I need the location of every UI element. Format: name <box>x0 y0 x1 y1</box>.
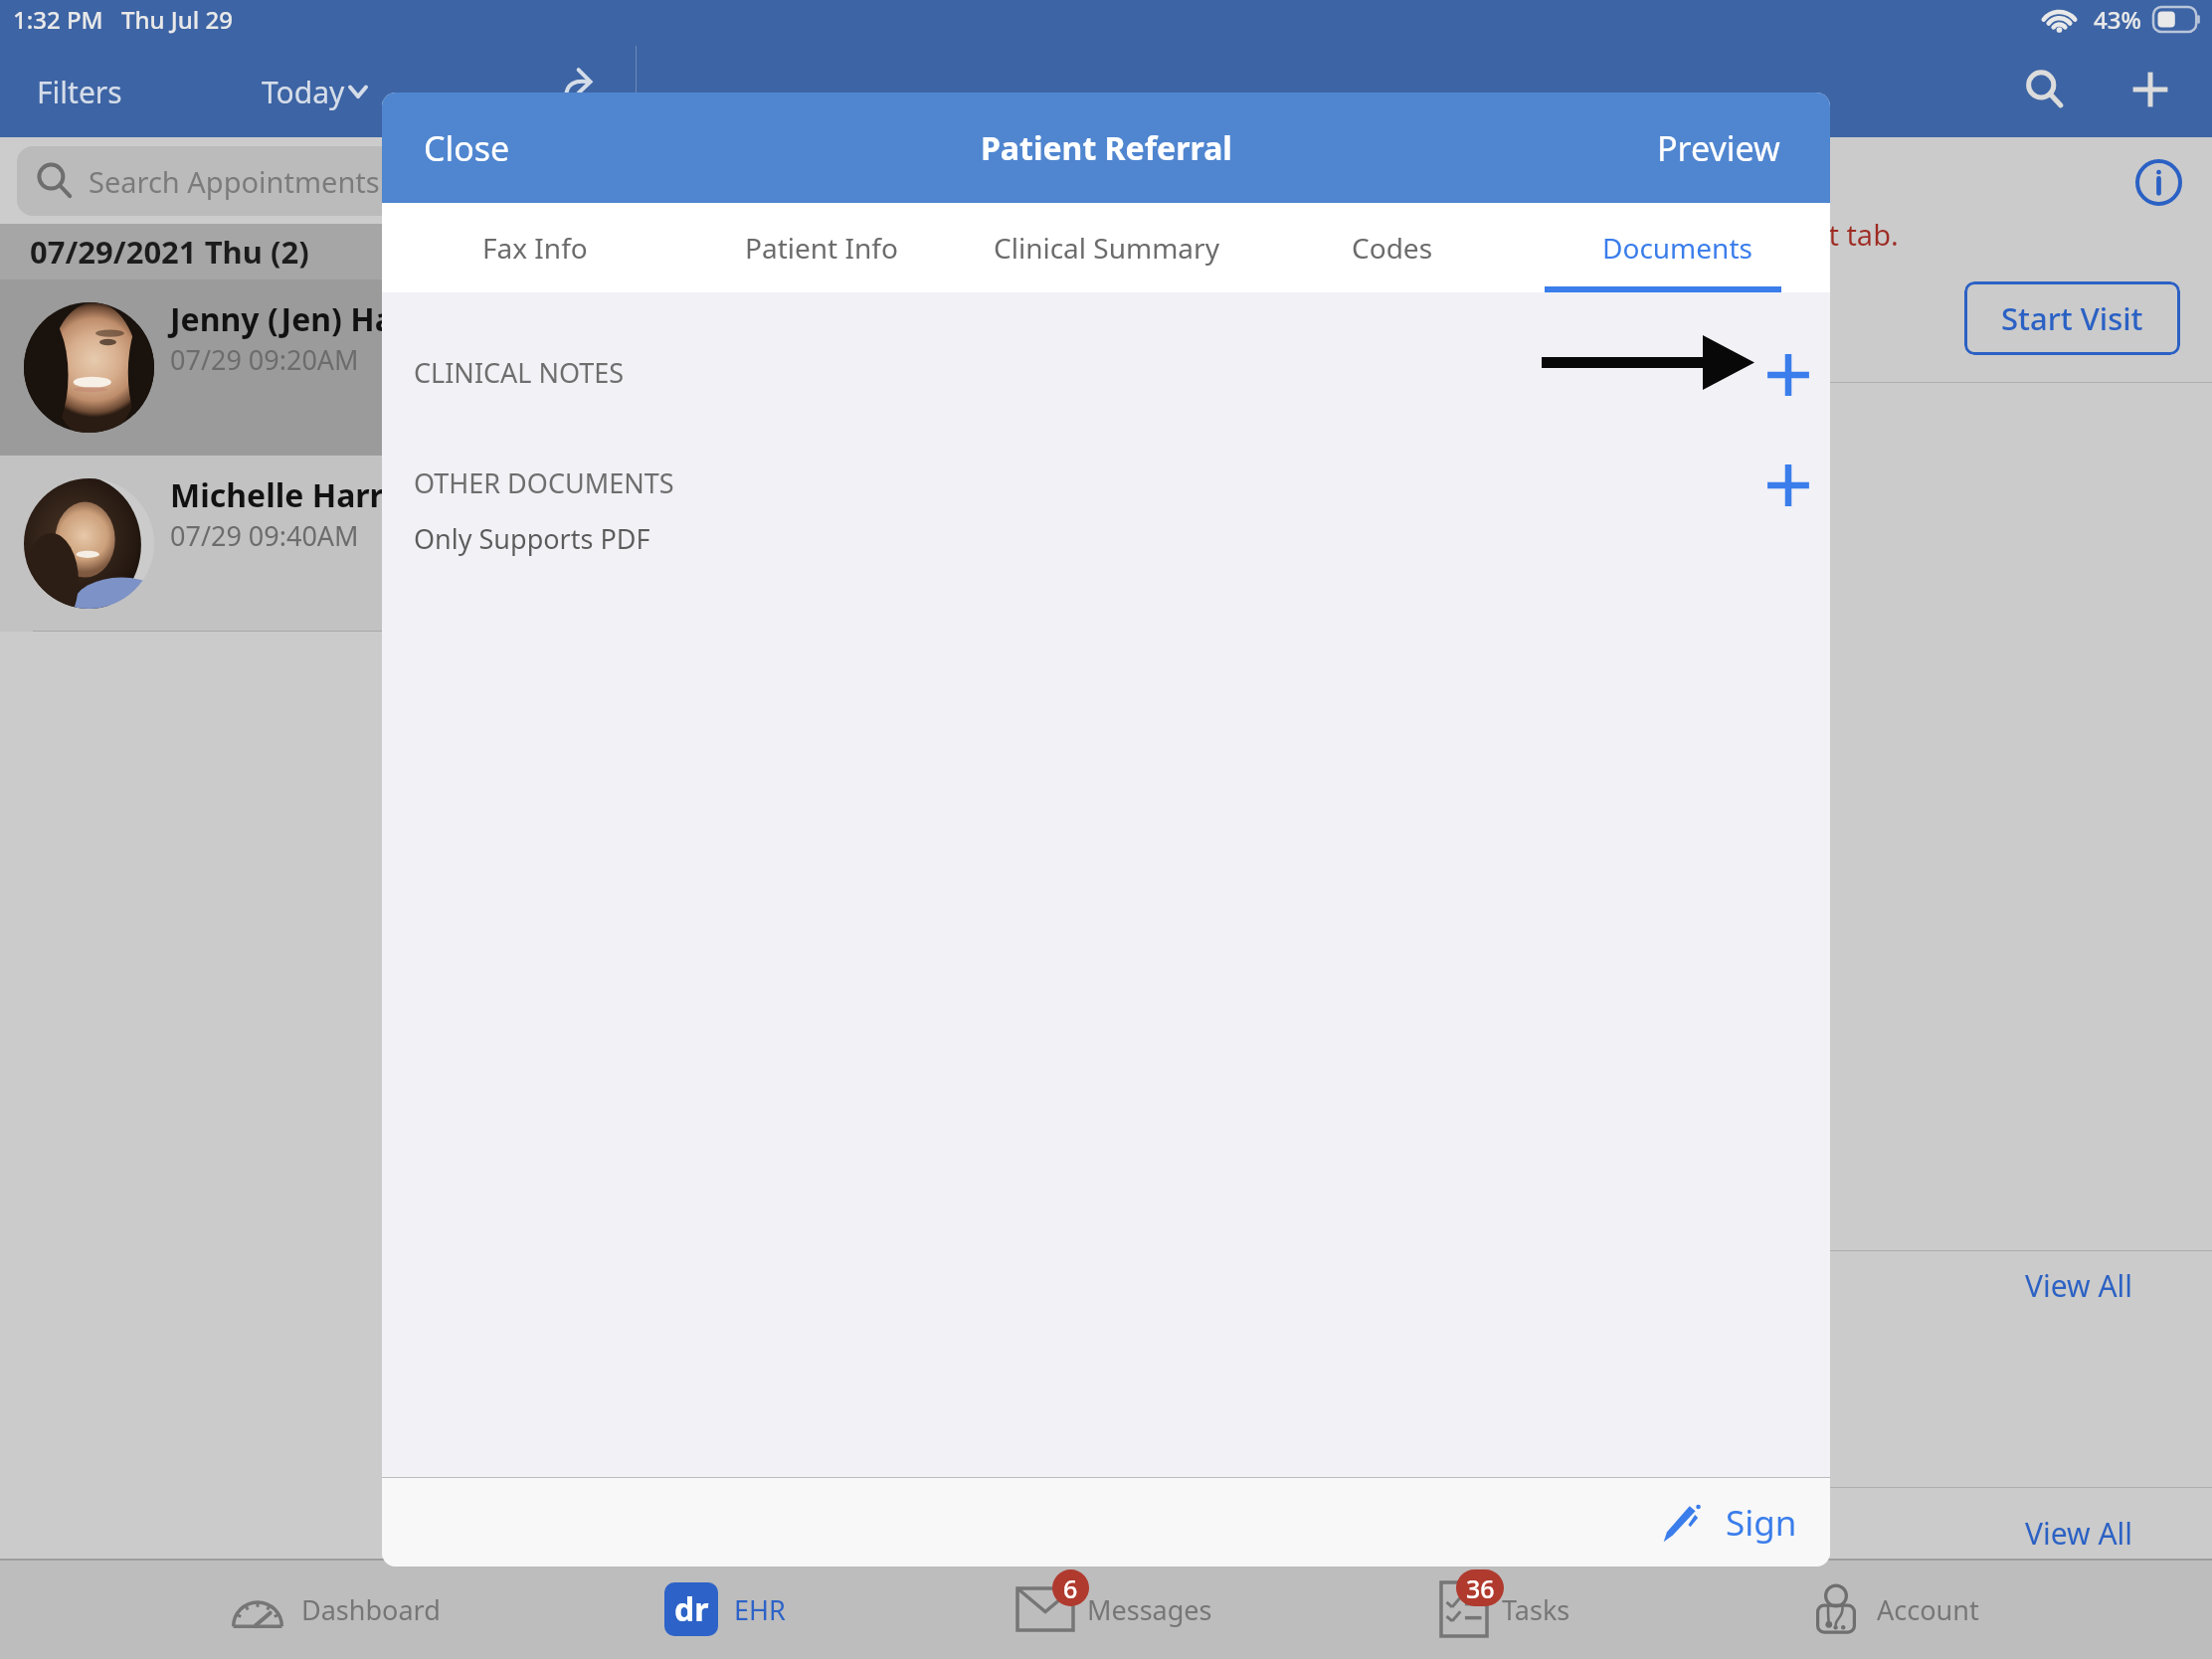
staticText: Jenny (Jen) Harris <box>170 297 449 341</box>
button[interactable]: Search <box>2015 60 2075 119</box>
staticText: CLINICAL NOTES <box>414 354 625 391</box>
staticText: Dashboard <box>301 1591 441 1628</box>
staticText: 6 <box>1063 1571 1078 1605</box>
button[interactable]: Fax Info <box>392 203 678 292</box>
staticText: 36 <box>1466 1571 1495 1605</box>
button[interactable]: View All <box>1991 1503 2166 1563</box>
button[interactable]: Filters <box>0 46 159 137</box>
button[interactable]: Start Visit <box>1964 281 2180 355</box>
staticText: Clinical Summary <box>994 229 1219 267</box>
button[interactable]: Documents <box>1535 203 1820 292</box>
staticText: Messages <box>1087 1591 1212 1628</box>
staticText: View All <box>2025 1513 2133 1554</box>
button[interactable]: Codes <box>1249 203 1535 292</box>
button[interactable]: Add document <box>1751 448 1826 523</box>
staticText: Fax Info <box>482 229 588 267</box>
staticText: Search Appointments <box>89 162 380 201</box>
button[interactable]: Share <box>547 52 609 113</box>
button[interactable]: Michelle Harrison <box>0 456 637 632</box>
staticText: Preview <box>1657 125 1780 171</box>
staticText: 43% <box>2094 3 2141 36</box>
button[interactable]: Dashboard <box>140 1559 530 1659</box>
staticText: 07/29 09:20AM <box>170 341 359 378</box>
staticText: Close <box>424 125 510 171</box>
staticText: 1:32 PM <box>13 3 103 36</box>
button[interactable]: Clinical Summary <box>964 203 1249 292</box>
staticText: Documents <box>1602 229 1752 267</box>
button[interactable]: Add clinical note <box>1751 337 1826 413</box>
staticText: 07/29 09:40AM <box>170 517 359 554</box>
button[interactable]: Today <box>252 46 378 137</box>
staticText: Filters <box>37 72 122 112</box>
staticText: Codes <box>1352 229 1433 267</box>
staticText: Sign <box>1726 1499 1797 1547</box>
button[interactable]: Jenny (Jen) Harris <box>0 279 637 456</box>
button[interactable]: View All <box>1991 1255 2166 1315</box>
button[interactable]: Preview <box>1615 92 1830 203</box>
button[interactable]: Sign <box>1638 1478 1830 1567</box>
button[interactable]: Patient Info <box>678 203 964 292</box>
staticText: Account <box>1877 1591 1979 1628</box>
button[interactable]: 6 <box>920 1559 1310 1659</box>
staticText: Please complete the Patient tab. <box>1462 215 1899 254</box>
staticText: dr <box>674 1587 709 1631</box>
staticText: Today <box>262 72 345 112</box>
staticText: Tasks <box>1502 1591 1570 1628</box>
staticText: Michelle Harrison <box>170 473 451 517</box>
staticText: Patient Referral <box>981 126 1232 170</box>
staticText: OTHER DOCUMENTS <box>414 464 674 501</box>
staticText: Start Visit <box>2001 297 2143 339</box>
button[interactable]: 36 <box>1310 1559 1700 1659</box>
button[interactable]: dr <box>530 1559 920 1659</box>
staticText: EHR <box>734 1591 786 1628</box>
staticText: Patient Info <box>745 229 898 267</box>
button[interactable]: Info <box>2135 159 2182 206</box>
button[interactable]: Search Appointments <box>17 146 620 216</box>
button[interactable]: Add <box>2120 60 2180 119</box>
button[interactable]: Close <box>382 92 552 203</box>
staticText: Only Supports PDF <box>414 520 650 557</box>
button[interactable]: Account <box>1700 1559 2090 1659</box>
staticText: Thu Jul 29 <box>121 3 234 36</box>
staticText: View All <box>2025 1265 2133 1306</box>
staticText: 07/29/2021 Thu (2) <box>30 231 309 273</box>
